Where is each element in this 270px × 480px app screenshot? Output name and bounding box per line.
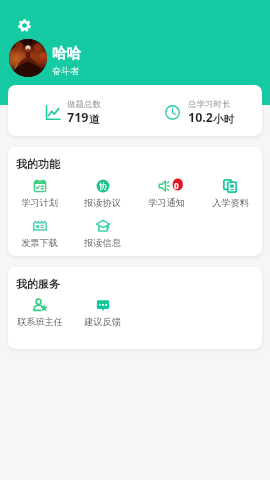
staticText: 报读协议 bbox=[84, 197, 121, 209]
staticText: 0 bbox=[174, 180, 179, 191]
staticText: 我的功能 bbox=[16, 157, 60, 171]
staticText: 小时 bbox=[213, 113, 234, 126]
staticText: 建议反馈 bbox=[84, 316, 121, 328]
button[interactable]: 发票下载 bbox=[8, 219, 71, 249]
staticText: 719 bbox=[67, 109, 89, 126]
button[interactable]: 总学习时长 bbox=[135, 85, 262, 136]
staticText: 入学资料 bbox=[212, 197, 249, 209]
button[interactable]: 0 bbox=[134, 179, 198, 209]
staticText: 10.2 bbox=[188, 109, 213, 126]
button[interactable]: 建议反馈 bbox=[71, 298, 134, 328]
button[interactable]: Avatar bbox=[9, 39, 47, 77]
button[interactable]: Settings bbox=[18, 19, 31, 32]
staticText: 报读信息 bbox=[84, 237, 121, 249]
staticText: 道 bbox=[89, 113, 100, 126]
staticText: 协 bbox=[99, 181, 107, 191]
staticText: 奋斗者 bbox=[52, 65, 79, 76]
button[interactable]: 联系班主任 bbox=[8, 298, 71, 328]
staticText: 发票下载 bbox=[21, 237, 58, 249]
staticText: 哈哈 bbox=[52, 44, 81, 62]
staticText: 我的服务 bbox=[16, 277, 60, 291]
button[interactable]: 入学资料 bbox=[198, 179, 262, 209]
staticText: 总学习时长 bbox=[188, 99, 231, 108]
button[interactable]: 报读信息 bbox=[71, 219, 134, 249]
staticText: 联系班主任 bbox=[17, 316, 63, 328]
staticText: 学习通知 bbox=[148, 197, 185, 209]
button[interactable]: 学习计划 bbox=[8, 179, 71, 209]
button[interactable]: 做题总数 bbox=[8, 85, 135, 136]
staticText: 做题总数 bbox=[67, 99, 101, 108]
button[interactable]: 协 bbox=[71, 179, 134, 209]
staticText: 学习计划 bbox=[21, 197, 58, 209]
